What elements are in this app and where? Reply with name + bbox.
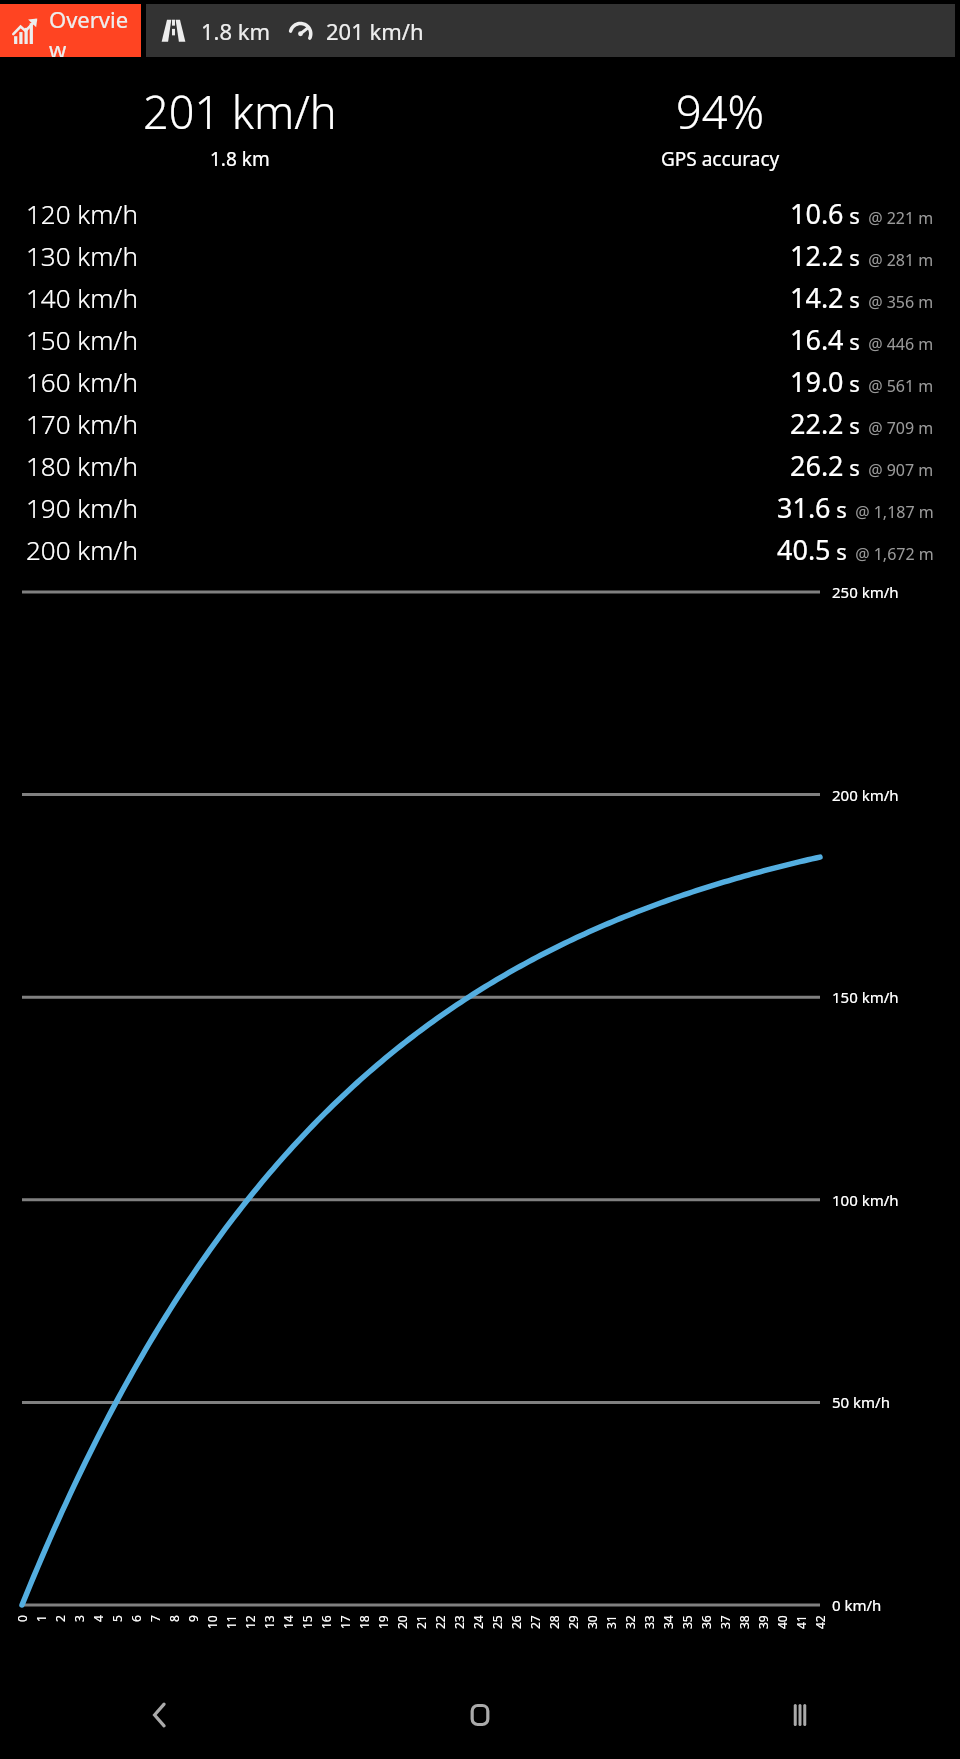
staticText: 190 km/h: [26, 490, 138, 525]
staticText: 26.2 s @ 907 m: [790, 447, 934, 484]
staticText: GPS accuracy: [661, 146, 780, 172]
staticText: 1.8 km: [210, 146, 270, 172]
button[interactable]: 120 km/h: [0, 192, 960, 234]
button[interactable]: Home: [320, 1671, 640, 1759]
staticText: 1.8 km: [201, 16, 271, 46]
staticText: 14.2 s @ 356 m: [790, 279, 934, 316]
button[interactable]: Recent apps: [640, 1671, 960, 1759]
staticText: 201 km/h: [143, 81, 337, 142]
button[interactable]: 190 km/h: [0, 486, 960, 528]
button[interactable]: 1.8 km: [146, 4, 955, 57]
staticText: 160 km/h: [26, 364, 138, 399]
button[interactable]: 170 km/h: [0, 402, 960, 444]
button[interactable]: 160 km/h: [0, 360, 960, 402]
button[interactable]: Back: [0, 1671, 320, 1759]
staticText: 40.5 s @ 1,672 m: [777, 531, 934, 568]
staticText: 12.2 s @ 281 m: [790, 237, 934, 274]
button[interactable]: 180 km/h: [0, 444, 960, 486]
staticText: 10.6 s @ 221 m: [790, 195, 934, 232]
button[interactable]: 150 km/h: [0, 318, 960, 360]
staticText: 16.4 s @ 446 m: [790, 321, 934, 358]
button[interactable]: 140 km/h: [0, 276, 960, 318]
staticText: 31.6 s @ 1,187 m: [777, 489, 934, 526]
staticText: 19.0 s @ 561 m: [790, 363, 934, 400]
button[interactable]: 200 km/h: [0, 528, 960, 570]
staticText: 180 km/h: [26, 448, 138, 483]
staticText: 94%: [676, 81, 764, 142]
staticText: 140 km/h: [26, 280, 138, 315]
button[interactable]: 130 km/h: [0, 234, 960, 276]
button[interactable]: Overview: [0, 4, 141, 57]
staticText: 120 km/h: [26, 196, 138, 231]
staticText: 130 km/h: [26, 238, 138, 273]
staticText: 201 km/h: [326, 16, 424, 46]
staticText: 150 km/h: [26, 322, 138, 357]
staticText: Overview: [49, 4, 141, 57]
staticText: 170 km/h: [26, 406, 138, 441]
staticText: 200 km/h: [26, 532, 138, 567]
staticText: 22.2 s @ 709 m: [790, 405, 934, 442]
